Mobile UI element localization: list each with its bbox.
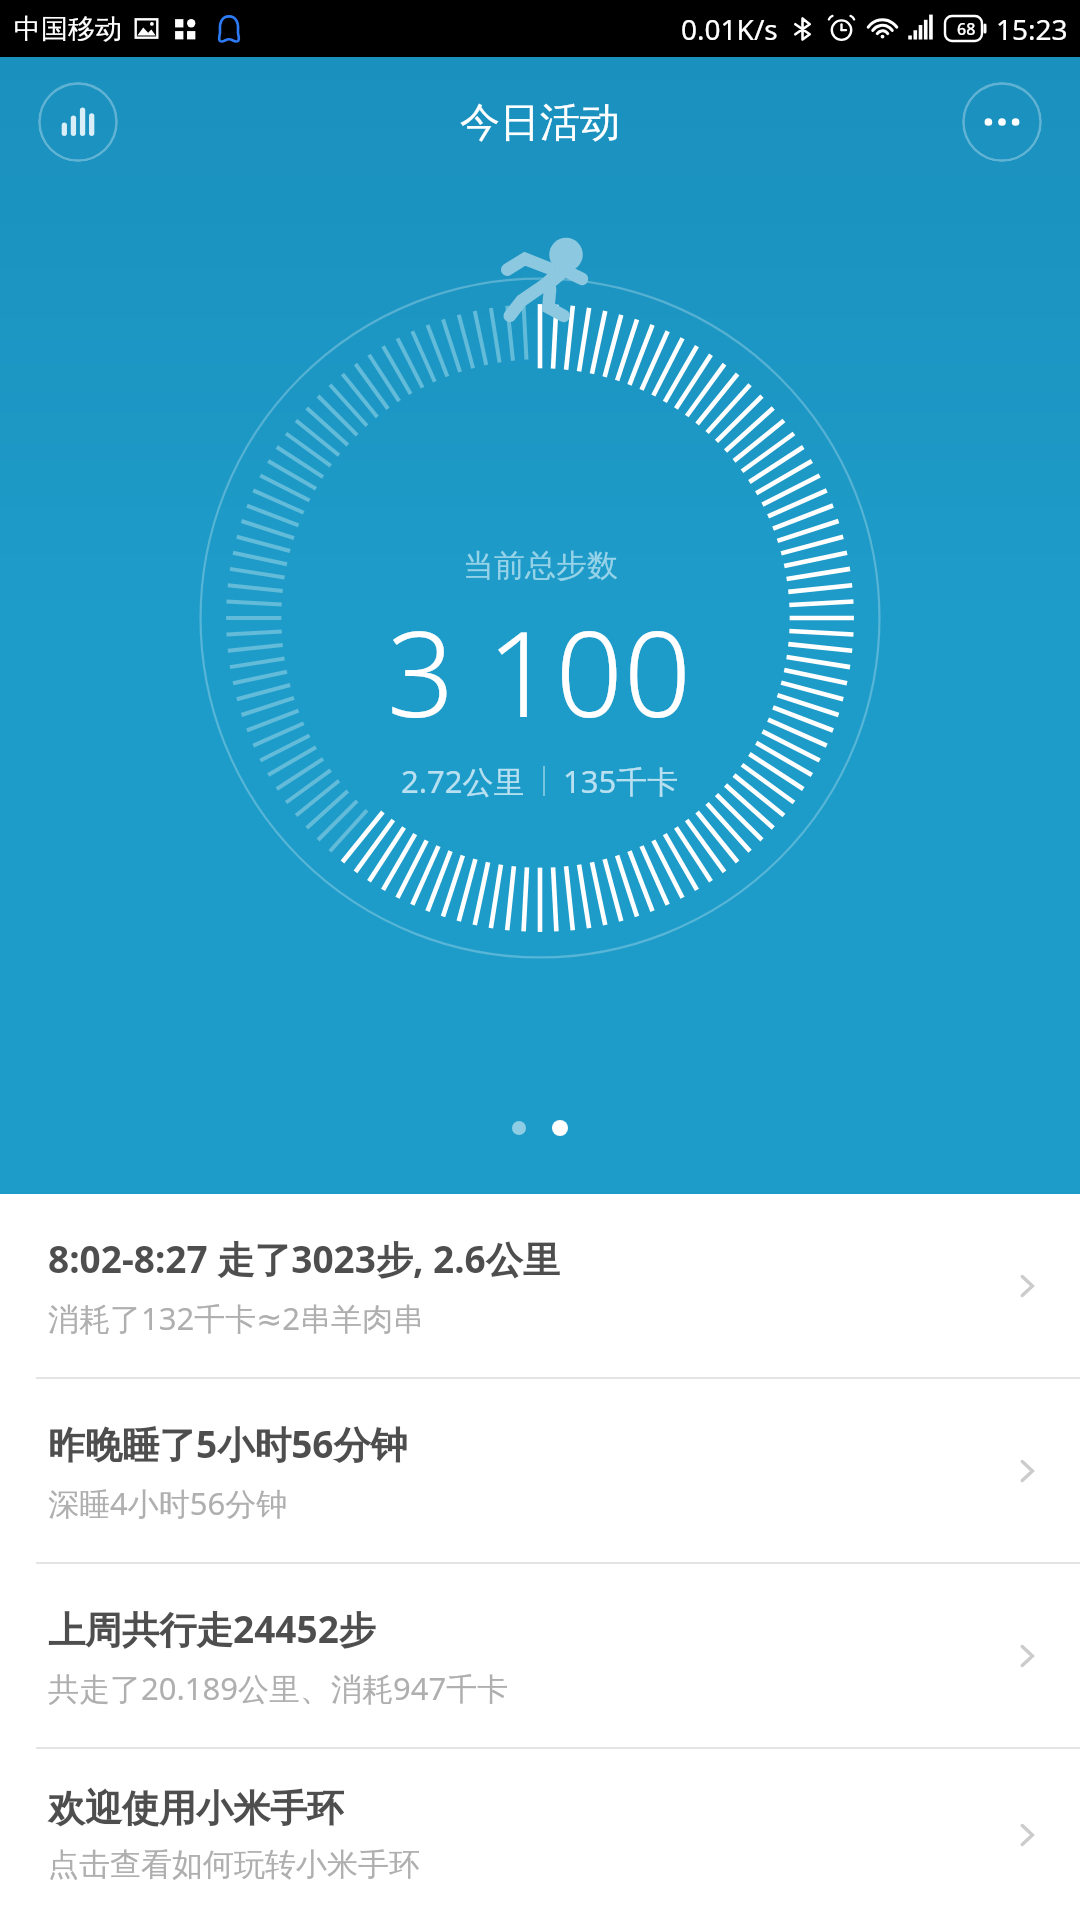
staticText: 昨晚睡了5小时56分钟 (48, 1418, 408, 1469)
button[interactable]: More options (962, 82, 1042, 162)
staticText: 68 (957, 18, 976, 40)
staticText: 中国移动 (14, 12, 122, 46)
staticText: 共走了20.189公里、消耗947千卡 (48, 1667, 509, 1709)
staticText: 8:02-8:27 走了3023步, 2.6公里 (48, 1233, 560, 1284)
button[interactable]: 8:02-8:27 走了3023步, 2.6公里 (0, 1194, 1080, 1377)
staticText: 消耗了132千卡≈2串羊肉串 (48, 1297, 424, 1339)
staticText: 深睡4小时56分钟 (48, 1482, 288, 1524)
staticText: 3 100 (387, 591, 693, 752)
staticText: 2.72公里 (401, 760, 525, 802)
staticText: 欢迎使用小米手环 (48, 1785, 344, 1832)
button[interactable]: Statistics (38, 82, 118, 162)
staticText: 点击查看如何玩转小米手环 (48, 1845, 420, 1884)
staticText: 135千卡 (563, 760, 679, 802)
staticText: 今日活动 (460, 97, 620, 147)
button[interactable]: 上周共行走24452步 (0, 1564, 1080, 1747)
staticText: 上周共行走24452步 (48, 1603, 376, 1654)
staticText: 当前总步数 (463, 546, 618, 585)
button[interactable]: 昨晚睡了5小时56分钟 (0, 1379, 1080, 1562)
staticText: 15:23 (996, 10, 1068, 48)
button[interactable]: 欢迎使用小米手环 (0, 1749, 1080, 1920)
staticText: 0.01K/s (681, 10, 778, 48)
